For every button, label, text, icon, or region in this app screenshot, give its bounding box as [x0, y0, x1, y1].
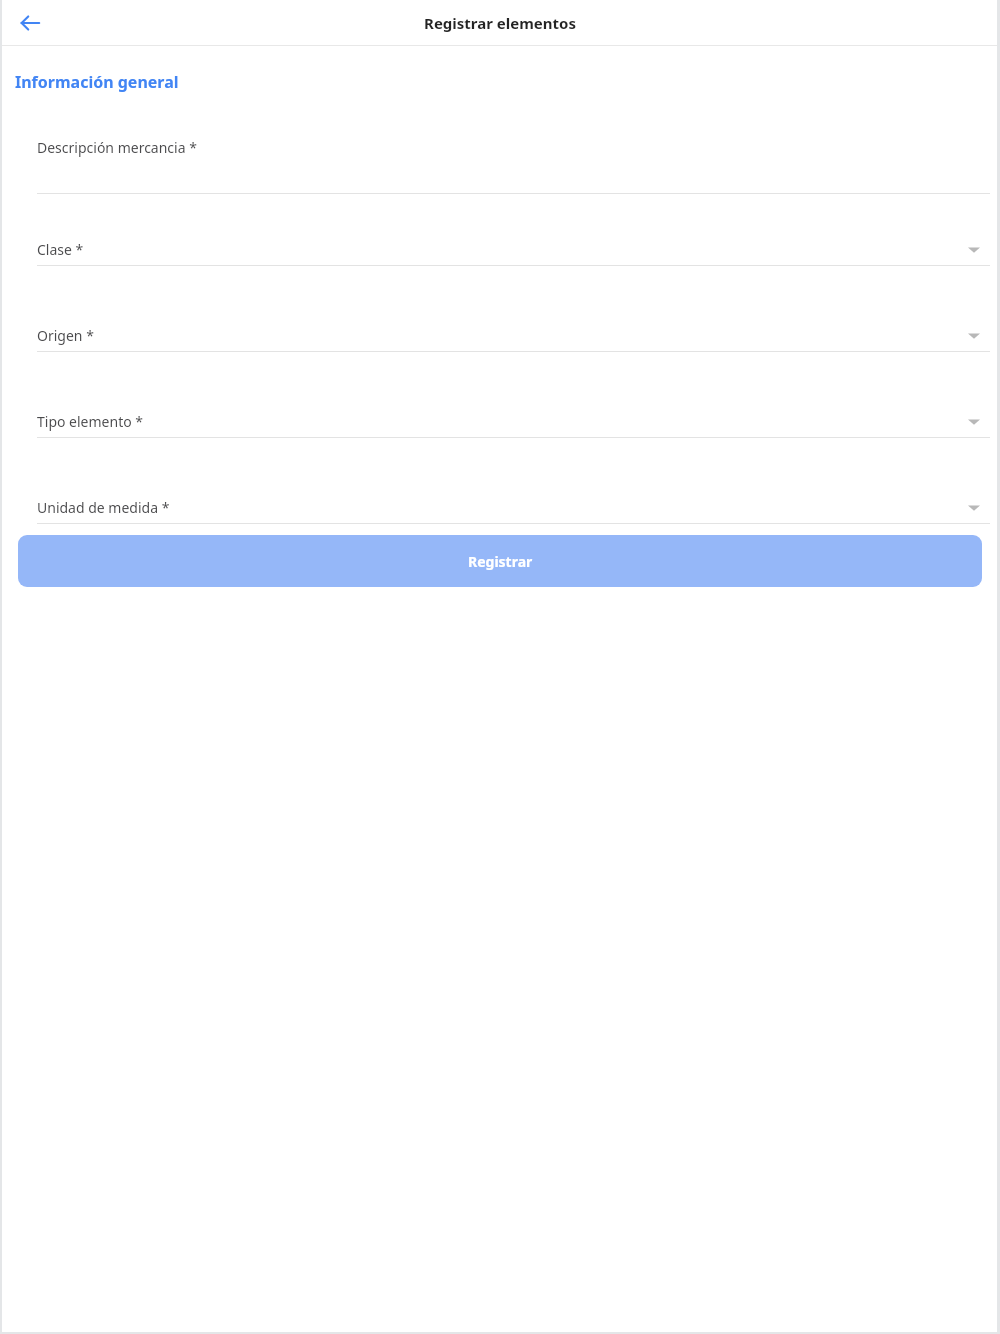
staticText: Unidad de medida * — [37, 498, 968, 517]
staticText: Origen * — [37, 326, 968, 345]
staticText: Registrar elementos — [0, 13, 1000, 33]
button[interactable]: Back — [8, 1, 52, 45]
button[interactable]: Registrar — [18, 535, 982, 587]
staticText: Registrar — [468, 552, 533, 571]
button[interactable]: Clase * — [0, 240, 1000, 266]
button[interactable]: Tipo elemento * — [0, 412, 1000, 438]
button[interactable]: Unidad de medida * — [0, 498, 1000, 524]
button[interactable]: Origen * — [0, 326, 1000, 352]
staticText: Clase * — [37, 240, 968, 259]
staticText: Descripción mercancia * — [37, 138, 980, 157]
staticText: Tipo elemento * — [37, 412, 968, 431]
staticText: Información general — [15, 71, 179, 93]
button[interactable]: Descripción mercancia * — [0, 138, 1000, 194]
